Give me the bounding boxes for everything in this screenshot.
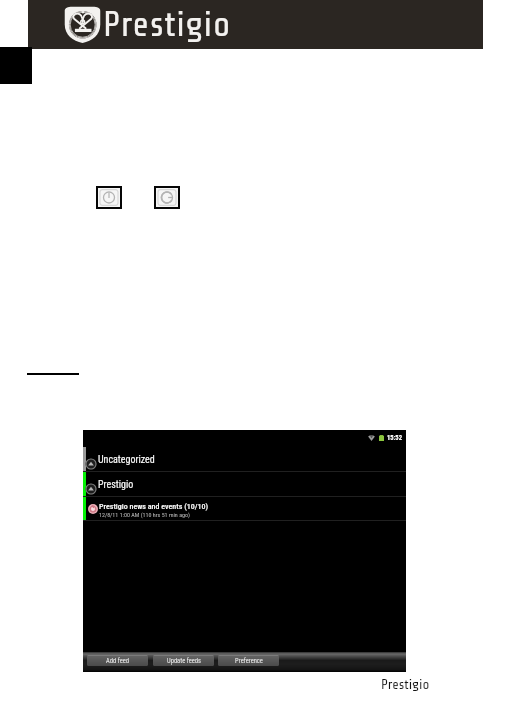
button[interactable]: Update feeds [153, 655, 214, 666]
button[interactable]: Add feed [87, 655, 148, 666]
button[interactable]: Preference [218, 655, 279, 666]
staticText: 12/8/11 1:00 AM (110 hrs 51 min ago) [99, 511, 190, 518]
staticText: Preference [235, 657, 263, 665]
staticText: Prestigio news and events (10/10) [99, 502, 209, 511]
staticText: Update feeds [167, 657, 201, 665]
staticText: 15:52 [387, 434, 402, 442]
button[interactable]: Uncategorized [83, 447, 406, 471]
button[interactable]: Prestigio [83, 472, 406, 496]
button[interactable]: Prestigio news and events (10/10) [83, 497, 406, 520]
button[interactable]: Open application [96, 186, 122, 209]
button[interactable]: Settings [154, 186, 180, 209]
staticText: Uncategorized [98, 454, 155, 466]
staticText: Add feed [106, 657, 129, 665]
staticText: Prestigio [381, 677, 430, 693]
staticText: Prestigio [98, 479, 134, 491]
staticText: Prestigio [103, 5, 232, 44]
